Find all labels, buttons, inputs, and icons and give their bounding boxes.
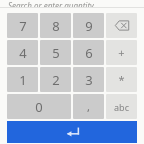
staticText: 1 <box>19 71 27 89</box>
button[interactable]: 0 <box>7 94 71 119</box>
button[interactable]: 3 <box>73 67 104 92</box>
button[interactable]: 9 <box>73 13 104 38</box>
button[interactable]: 2 <box>40 67 71 92</box>
staticText: abc <box>114 101 129 113</box>
staticText: 0 <box>35 98 43 116</box>
button[interactable]: 8 <box>40 13 71 38</box>
staticText: 8 <box>52 17 60 35</box>
button[interactable]: 6 <box>73 40 104 65</box>
button[interactable]: , <box>73 94 104 119</box>
button[interactable]: Enter <box>7 121 137 143</box>
staticText: 5 <box>52 44 60 62</box>
button[interactable]: + <box>106 40 137 65</box>
button[interactable]: * <box>106 67 137 92</box>
staticText: Search or enter quantity <box>8 0 94 7</box>
staticText: 9 <box>85 17 93 35</box>
staticText: * <box>118 72 125 87</box>
staticText: 6 <box>85 44 93 62</box>
button[interactable]: 5 <box>40 40 71 65</box>
button[interactable]: 7 <box>7 13 38 38</box>
staticText: 2 <box>52 71 60 89</box>
button[interactable]: 1 <box>7 67 38 92</box>
button[interactable]: 4 <box>7 40 38 65</box>
staticText: 7 <box>19 17 27 35</box>
staticText: 3 <box>85 71 93 89</box>
staticText: 4 <box>19 44 27 62</box>
staticText: + <box>118 45 125 60</box>
button[interactable]: abc <box>106 94 137 119</box>
staticText: , <box>87 99 90 114</box>
button[interactable]: Search or enter quantity <box>0 0 144 7</box>
button[interactable]: Backspace <box>106 13 137 38</box>
